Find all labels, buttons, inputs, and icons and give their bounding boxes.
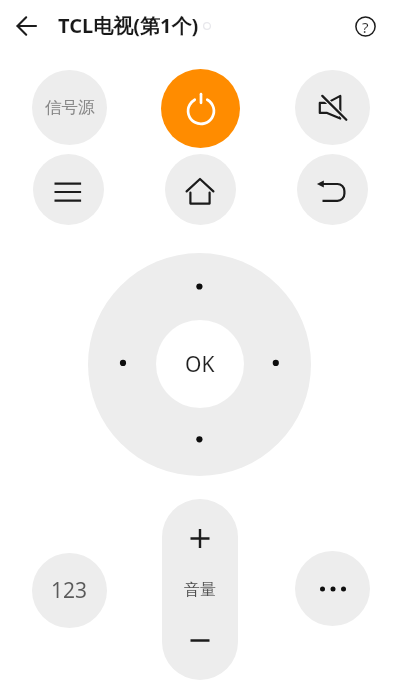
button[interactable]: Left [88, 327, 162, 402]
button[interactable]: More options [295, 551, 370, 626]
button[interactable]: OK [156, 320, 244, 408]
button[interactable]: 信号源 [32, 70, 107, 145]
button[interactable]: Volume down [162, 610, 238, 680]
button[interactable]: Up [88, 253, 311, 327]
button[interactable]: Back [13, 12, 41, 40]
button[interactable]: Menu [33, 154, 104, 225]
button[interactable]: Mute [295, 70, 370, 145]
button[interactable]: Down [88, 402, 311, 476]
button[interactable]: Help [351, 12, 380, 41]
staticText: OK [185, 350, 215, 379]
staticText: TCL电视(第1个) [58, 12, 199, 39]
staticText: 信号源 [45, 97, 95, 118]
button[interactable]: Return [297, 154, 368, 225]
button[interactable]: Right [237, 327, 311, 402]
button[interactable]: Volume up [162, 499, 238, 569]
staticText: 123 [51, 576, 88, 605]
staticText: ? [362, 17, 369, 37]
button[interactable]: 123 [32, 553, 107, 628]
button[interactable]: 音量 [162, 569, 238, 610]
button[interactable]: Power [161, 69, 240, 148]
button[interactable]: Home [165, 154, 236, 225]
staticText: 音量 [184, 580, 216, 600]
